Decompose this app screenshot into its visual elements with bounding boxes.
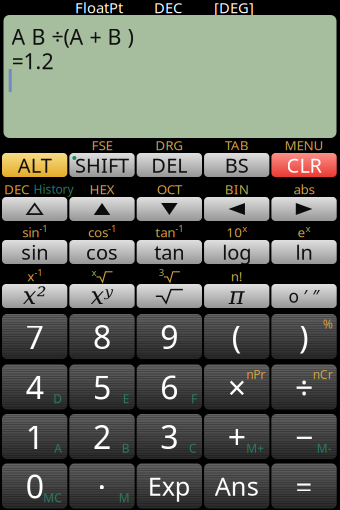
- button[interactable]: Cursor up: [2, 197, 67, 221]
- staticText: BS: [225, 152, 249, 178]
- button[interactable]: Square root: [137, 284, 202, 308]
- staticText: x: [242, 222, 247, 234]
- button[interactable]: π: [204, 284, 269, 308]
- staticText: cos: [88, 223, 108, 241]
- button[interactable]: Exp: [137, 463, 202, 508]
- staticText: nCr: [313, 366, 333, 382]
- button[interactable]: Scroll up: [69, 197, 135, 221]
- staticText: 2: [93, 415, 111, 458]
- staticText: SHIFT: [75, 152, 129, 178]
- staticText: C: [189, 440, 197, 456]
- staticText: =1.2: [11, 47, 53, 75]
- button[interactable]: Move left: [204, 197, 269, 221]
- staticText: -1: [108, 222, 116, 234]
- button[interactable]: 3: [137, 414, 202, 459]
- staticText: +: [228, 415, 246, 458]
- staticText: =: [295, 466, 312, 505]
- staticText: o ′ ″: [288, 284, 319, 307]
- button[interactable]: Scroll down: [137, 197, 202, 221]
- staticText: e: [297, 223, 305, 241]
- staticText: x: [305, 222, 310, 234]
- button[interactable]: ): [271, 314, 337, 359]
- button[interactable]: 5: [69, 364, 135, 409]
- button[interactable]: xʸ: [69, 284, 135, 308]
- staticText: CLR: [286, 152, 321, 178]
- staticText: tan: [154, 239, 184, 265]
- button[interactable]: (: [204, 314, 269, 359]
- staticText: DEC: [154, 0, 182, 17]
- staticText: M+: [246, 440, 264, 456]
- staticText: -1: [39, 222, 47, 234]
- staticText: -1: [34, 266, 42, 278]
- button[interactable]: log: [204, 240, 269, 264]
- staticText: DEC: [4, 180, 29, 198]
- staticText: Exp: [148, 469, 191, 503]
- staticText: tan: [155, 223, 175, 241]
- staticText: A: [54, 440, 62, 456]
- staticText: 3: [159, 266, 164, 279]
- staticText: [DEG]: [214, 0, 254, 17]
- button[interactable]: ÷: [271, 364, 337, 409]
- button[interactable]: x²: [2, 284, 67, 308]
- button[interactable]: ·: [69, 463, 135, 508]
- staticText: −: [295, 415, 313, 458]
- staticText: MENU: [284, 136, 323, 154]
- staticText: %: [323, 316, 333, 332]
- staticText: 1: [26, 415, 44, 458]
- button[interactable]: DEL: [137, 153, 202, 177]
- button[interactable]: −: [271, 414, 337, 459]
- staticText: History: [33, 181, 73, 197]
- button[interactable]: ln: [271, 240, 337, 264]
- staticText: ALT: [18, 152, 52, 178]
- staticText: D: [53, 391, 62, 406]
- staticText: xʸ: [90, 282, 113, 310]
- staticText: 9: [160, 315, 178, 358]
- staticText: 6: [160, 366, 178, 408]
- button[interactable]: 7: [2, 314, 67, 359]
- staticText: OCT: [157, 180, 182, 198]
- staticText: M: [119, 490, 130, 505]
- staticText: x²: [23, 282, 47, 310]
- staticText: 5: [93, 366, 111, 408]
- button[interactable]: o ′ ″: [271, 284, 337, 308]
- staticText: B: [122, 440, 130, 456]
- button[interactable]: 0: [2, 463, 67, 508]
- button[interactable]: CLR: [271, 153, 337, 177]
- staticText: sin: [21, 239, 48, 265]
- staticText: 3: [160, 415, 178, 458]
- staticText: sin: [22, 223, 39, 241]
- button[interactable]: Ans: [204, 463, 269, 508]
- staticText: DEL: [151, 152, 187, 178]
- button[interactable]: BS: [204, 153, 269, 177]
- staticText: BIN: [225, 180, 249, 198]
- button[interactable]: sin: [2, 240, 67, 264]
- staticText: ·: [97, 465, 106, 507]
- button[interactable]: Move right: [271, 197, 337, 221]
- button[interactable]: +: [204, 414, 269, 459]
- staticText: 4: [26, 366, 44, 408]
- staticText: ÷: [295, 366, 313, 408]
- button[interactable]: =: [271, 463, 337, 508]
- staticText: E: [123, 391, 130, 406]
- staticText: DRG: [155, 136, 183, 154]
- staticText: ln: [295, 239, 312, 265]
- staticText: log: [222, 239, 251, 265]
- staticText: M-: [317, 440, 332, 456]
- button[interactable]: 1: [2, 414, 67, 459]
- staticText: x: [91, 266, 96, 279]
- button[interactable]: 4: [2, 364, 67, 409]
- button[interactable]: 9: [137, 314, 202, 359]
- staticText: ): [299, 315, 309, 358]
- staticText: ×: [228, 366, 246, 408]
- button[interactable]: ×: [204, 364, 269, 409]
- button[interactable]: 2: [69, 414, 135, 459]
- button[interactable]: 6: [137, 364, 202, 409]
- button[interactable]: cos: [69, 240, 135, 264]
- button[interactable]: ALT: [2, 153, 67, 177]
- staticText: Ans: [215, 469, 259, 503]
- button[interactable]: SHIFT: [69, 153, 135, 177]
- staticText: HEX: [89, 180, 114, 198]
- button[interactable]: 8: [69, 314, 135, 359]
- button[interactable]: tan: [137, 240, 202, 264]
- staticText: 7: [26, 315, 44, 358]
